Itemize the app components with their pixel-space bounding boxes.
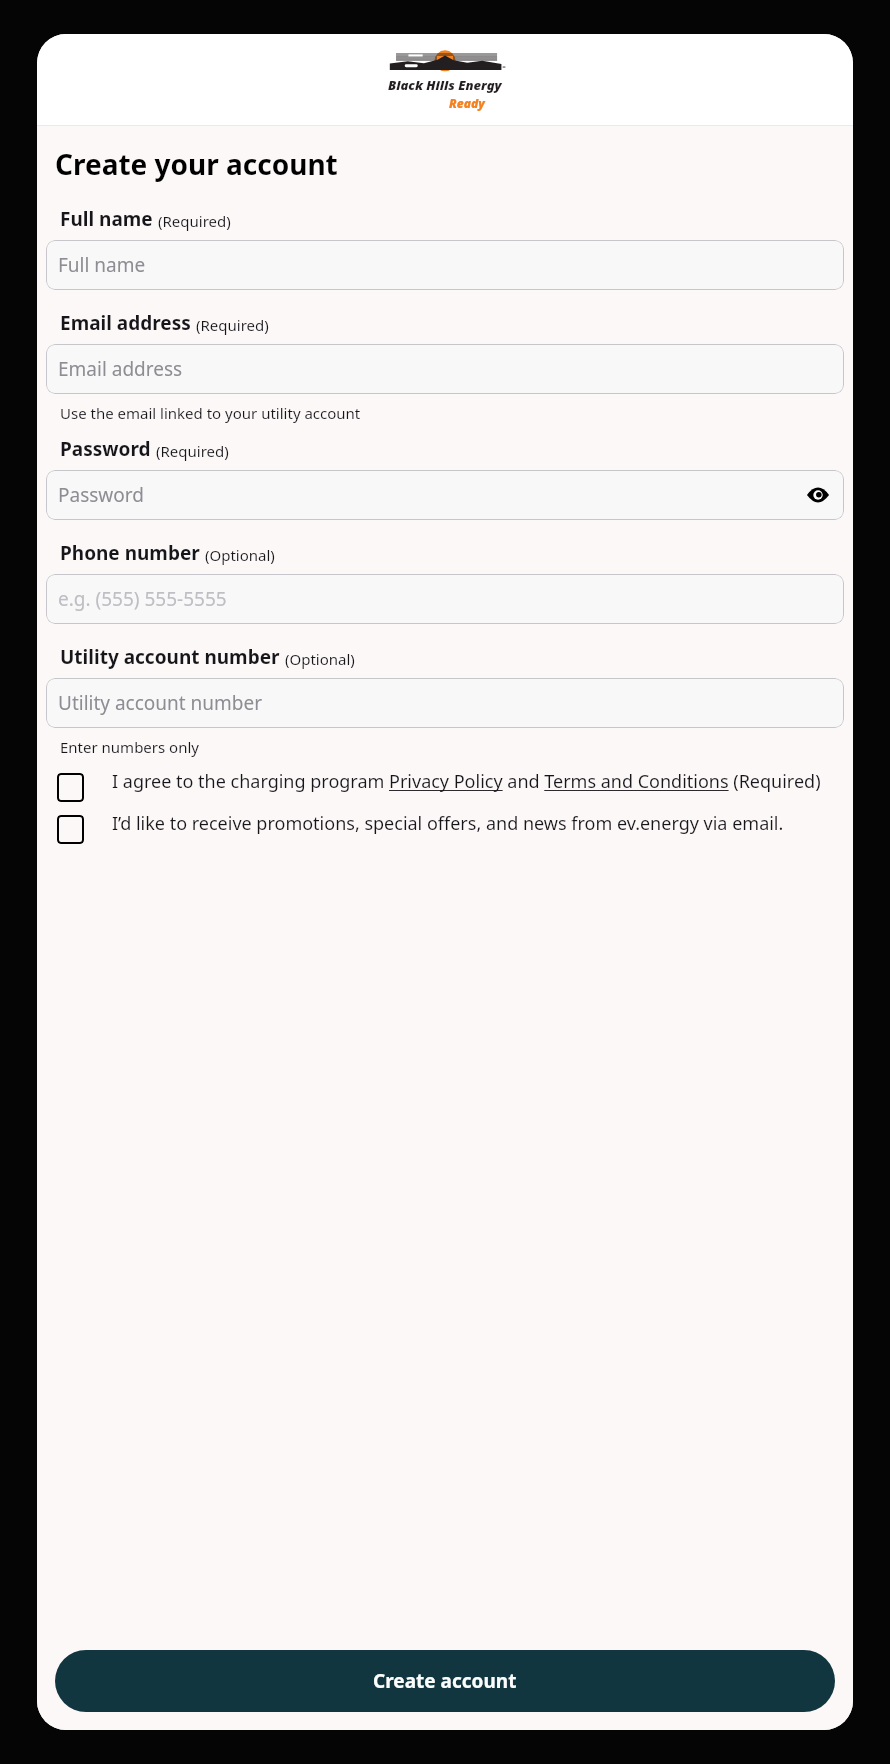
button[interactable]: Utility account number [46, 678, 844, 728]
staticText: (Required) [196, 315, 269, 335]
button[interactable]: Full name [46, 240, 844, 290]
button[interactable]: Password [46, 470, 844, 520]
staticText: e.g. (555) 555-5555 [58, 586, 227, 612]
staticText: Phone number [60, 540, 200, 566]
button[interactable]: Create account [55, 1650, 835, 1712]
other: Black Hills Energy Ready [383, 53, 507, 111]
staticText: Black Hills Energy [388, 76, 502, 94]
button[interactable]: Show password [805, 482, 831, 508]
button[interactable]: I’d like to receive promotions, special … [46, 811, 844, 840]
staticText: Create your account [55, 145, 338, 183]
staticText: Create account [373, 1668, 517, 1694]
staticText: Full name [60, 206, 153, 232]
staticText: Full name [58, 252, 146, 278]
button[interactable]: I agree to the charging program Privacy … [46, 769, 844, 798]
staticText: Utility account number [60, 644, 280, 670]
staticText: (Optional) [285, 649, 355, 669]
staticText: Utility account number [58, 690, 263, 716]
staticText: (Required) [158, 211, 231, 231]
staticText: (Required) [156, 441, 229, 461]
staticText: I’d like to receive promotions, special … [112, 811, 784, 836]
staticText: (Optional) [205, 545, 275, 565]
staticText: Email address [58, 356, 183, 382]
staticText: I agree to the charging program Privacy … [112, 769, 821, 794]
staticText: Password [58, 482, 144, 508]
button[interactable]: e.g. (555) 555-5555 [46, 574, 844, 624]
staticText: Email address [60, 310, 191, 336]
staticText: Password [60, 436, 151, 462]
staticText: Use the email linked to your utility acc… [60, 403, 361, 423]
staticText: Ready [449, 95, 485, 111]
staticText: Enter numbers only [60, 737, 199, 757]
button[interactable]: Email address [46, 344, 844, 394]
